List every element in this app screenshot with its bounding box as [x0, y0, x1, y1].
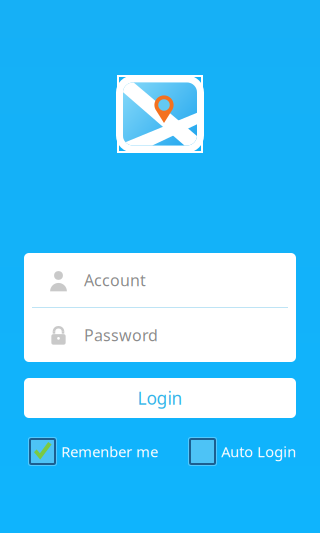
- staticText: Account: [84, 269, 146, 291]
- button[interactable]: Remenber me: [30, 439, 158, 464]
- staticText: Auto Login: [221, 442, 296, 461]
- staticText: Login: [137, 386, 182, 409]
- button[interactable]: Login: [24, 378, 296, 418]
- staticText: Remenber me: [61, 442, 158, 461]
- staticText: Password: [84, 324, 158, 346]
- button[interactable]: Auto Login: [190, 439, 296, 464]
